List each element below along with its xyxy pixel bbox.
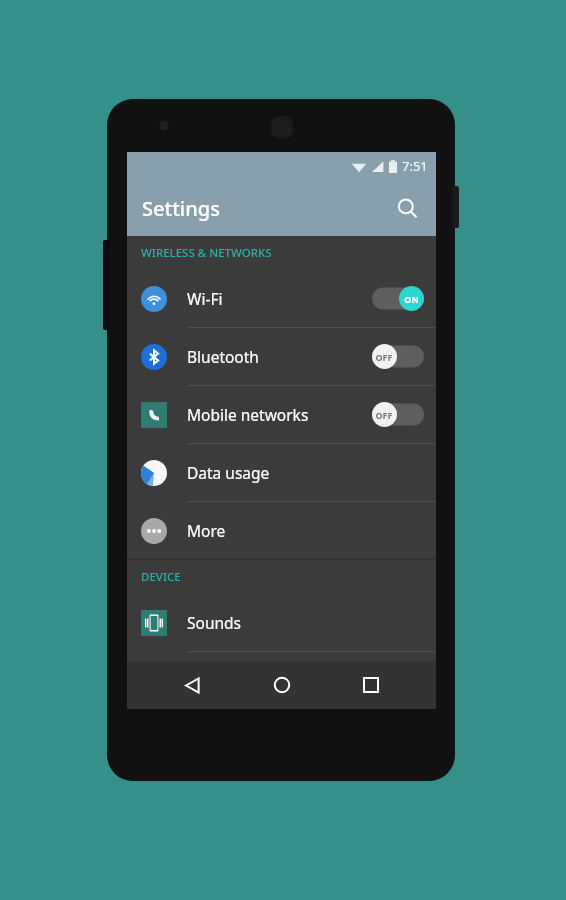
staticText: Wi-Fi <box>187 288 372 309</box>
button[interactable]: Home <box>258 661 306 709</box>
button[interactable]: Toggle off <box>372 402 424 427</box>
staticText: WIRELESS & NETWORKS <box>141 245 272 261</box>
button[interactable]: Wi-Fi <box>127 270 436 328</box>
staticText: Sounds <box>187 612 424 633</box>
staticText: Mobile networks <box>187 404 372 425</box>
staticText: 7:51 <box>402 157 428 175</box>
button[interactable]: Back <box>168 661 216 709</box>
staticText: More <box>187 520 424 541</box>
button[interactable]: Bluetooth <box>127 328 436 386</box>
staticText: ON <box>404 293 419 305</box>
staticText: OFF <box>375 351 393 363</box>
staticText: OFF <box>375 409 393 421</box>
staticText: DEVICE <box>141 569 181 585</box>
button[interactable]: More <box>127 502 436 559</box>
button[interactable]: Sounds <box>127 594 436 652</box>
staticText: Data usage <box>187 462 424 483</box>
button[interactable]: Recent apps <box>347 661 395 709</box>
button[interactable]: Toggle off <box>372 344 424 369</box>
staticText: Bluetooth <box>187 346 372 367</box>
button[interactable]: Data usage <box>127 444 436 502</box>
button[interactable]: Mobile networks <box>127 386 436 444</box>
button[interactable]: Search <box>386 187 428 229</box>
button[interactable]: Toggle on <box>372 286 424 311</box>
staticText: Settings <box>142 195 220 222</box>
